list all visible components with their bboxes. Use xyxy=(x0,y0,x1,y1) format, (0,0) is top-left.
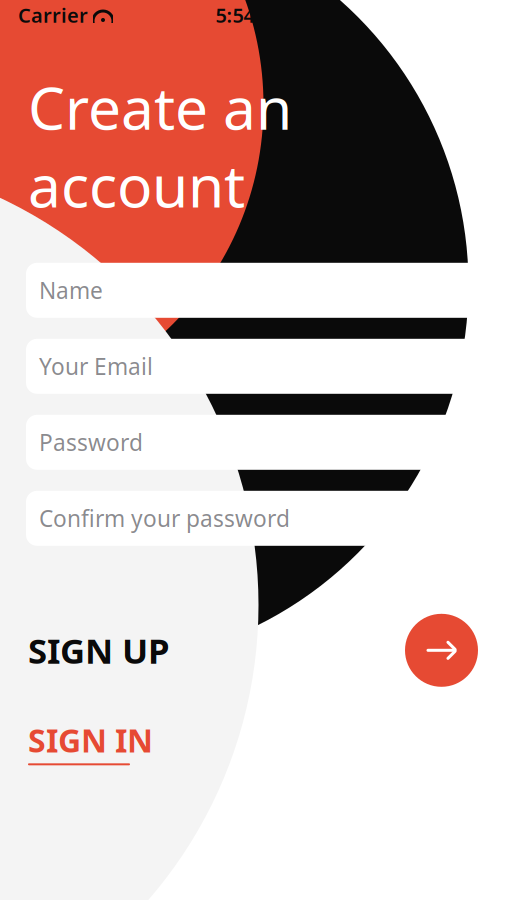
button[interactable]: SIGN IN xyxy=(28,715,153,769)
button[interactable]: SIGN UP xyxy=(28,617,184,683)
staticText: Confirm your password xyxy=(39,503,290,533)
button[interactable]: Continue xyxy=(405,614,478,687)
staticText: Carrier xyxy=(18,2,88,28)
staticText: SIGN UP xyxy=(28,627,170,673)
staticText: 5:54 AM xyxy=(215,2,291,28)
staticText: Password xyxy=(39,427,143,457)
staticText: SIGN IN xyxy=(28,719,153,761)
staticText: Your Email xyxy=(39,351,153,381)
staticText: Create an account xyxy=(28,68,292,224)
staticText: Name xyxy=(39,275,103,305)
